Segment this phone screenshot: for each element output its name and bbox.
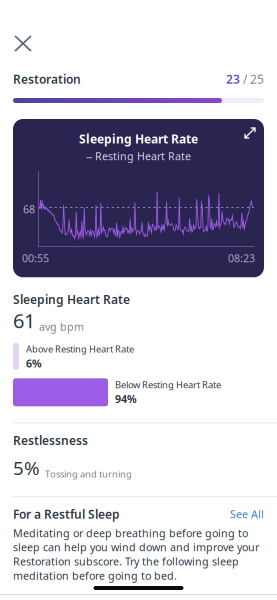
staticText: 94% xyxy=(115,392,137,406)
staticText: 08:23 xyxy=(228,251,255,265)
staticText: avg bpm xyxy=(39,320,84,334)
button[interactable]: Expand chart xyxy=(236,119,264,147)
staticText: 68 xyxy=(23,202,35,216)
button[interactable]: Close xyxy=(6,27,40,60)
staticText: 61 xyxy=(13,307,35,334)
staticText: 23 xyxy=(226,71,240,87)
staticText: Tossing and turning xyxy=(45,468,132,480)
staticText: Meditating or deep breathing before goin… xyxy=(13,526,259,583)
staticText: 6% xyxy=(26,356,42,370)
staticText: See All xyxy=(230,507,264,521)
staticText: -- Resting Heart Rate xyxy=(86,149,191,163)
staticText: Sleeping Heart Rate xyxy=(13,291,130,307)
button[interactable]: See All xyxy=(230,507,264,521)
staticText: Above Resting Heart Rate xyxy=(26,343,134,355)
staticText: 5% xyxy=(13,455,40,480)
staticText: / 25 xyxy=(240,71,264,87)
staticText: 00:55 xyxy=(22,251,49,265)
staticText: Sleeping Heart Rate xyxy=(79,131,198,147)
staticText: Restoration xyxy=(13,71,81,87)
staticText: Restlessness xyxy=(13,432,88,448)
staticText: For a Restful Sleep xyxy=(13,506,120,522)
staticText: Below Resting Heart Rate xyxy=(115,378,221,391)
